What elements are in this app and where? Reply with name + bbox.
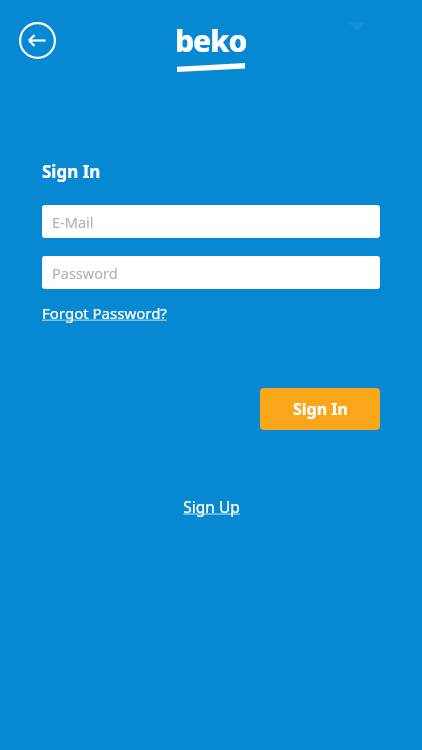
staticText: beko: [175, 20, 247, 61]
staticText: Password: [52, 263, 118, 283]
button[interactable]: Sign Up: [175, 492, 248, 521]
staticText: Sign In: [293, 398, 348, 420]
staticText: E-Mail: [52, 212, 94, 232]
button[interactable]: Sign In: [260, 388, 380, 430]
staticText: Sign In: [42, 160, 101, 183]
button[interactable]: Back: [19, 22, 56, 59]
button[interactable]: Forgot Password?: [42, 300, 167, 326]
button[interactable]: E-Mail: [42, 205, 380, 238]
staticText: Forgot Password?: [42, 303, 167, 323]
staticText: Sign Up: [183, 496, 240, 517]
button[interactable]: Password: [42, 256, 380, 289]
